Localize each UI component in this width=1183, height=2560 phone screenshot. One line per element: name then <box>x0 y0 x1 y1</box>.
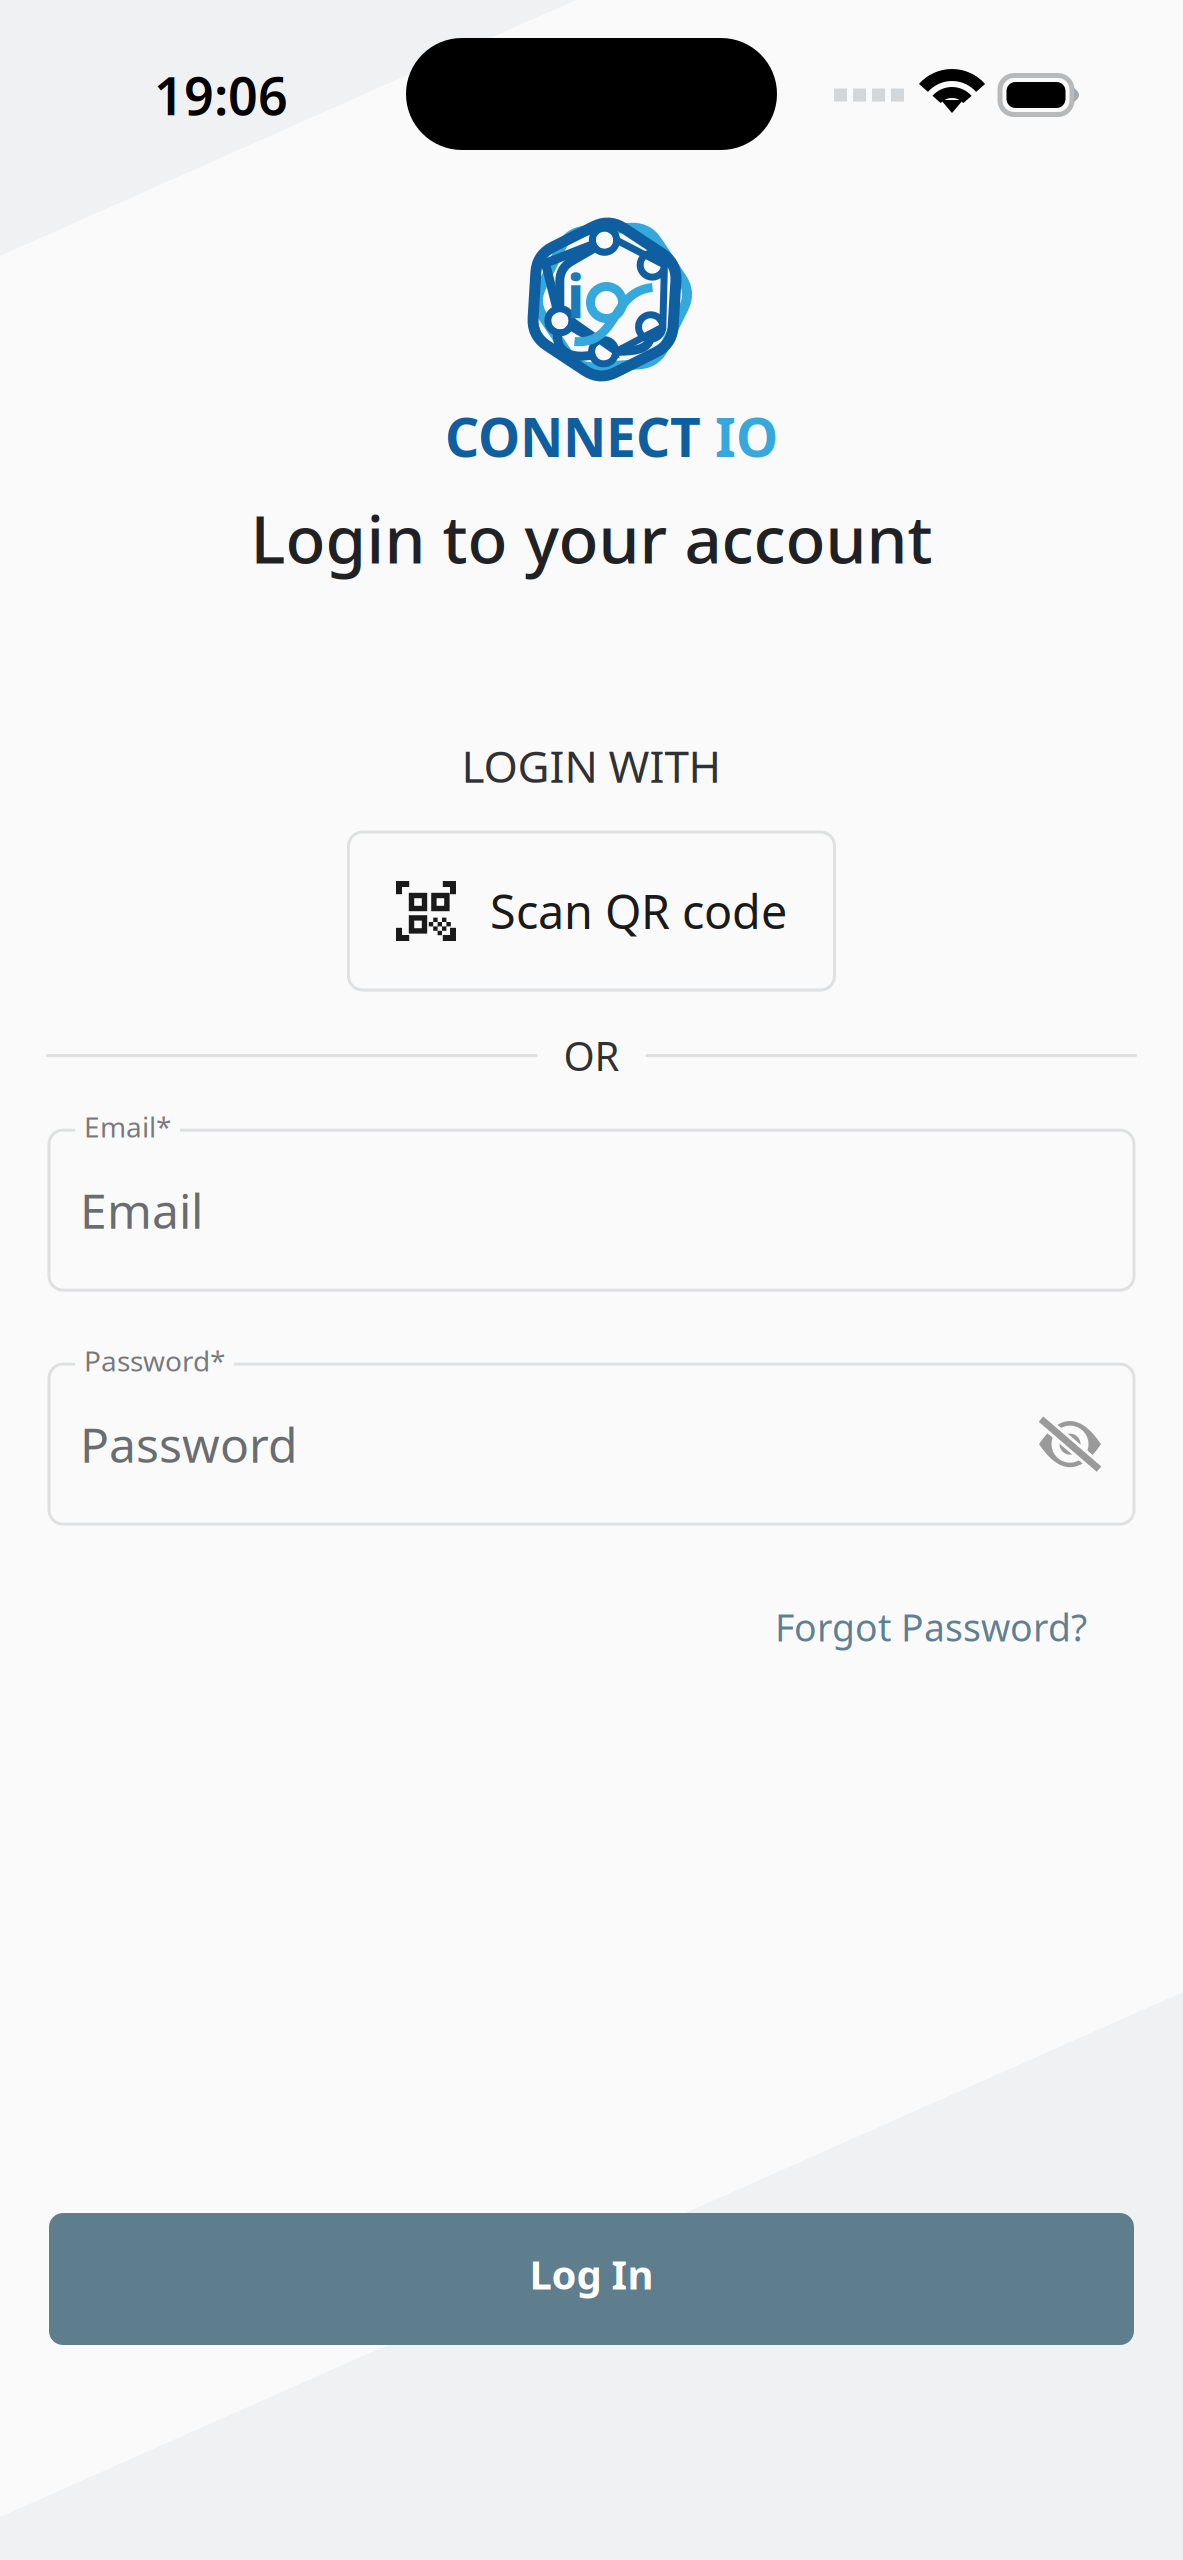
button[interactable]: Show password <box>1037 1415 1103 1473</box>
staticText: Password* <box>84 1342 225 1379</box>
staticText: LOGIN WITH <box>461 737 721 795</box>
staticText: Login to your account <box>250 495 932 582</box>
button[interactable]: Scan QR code <box>348 832 834 990</box>
button[interactable]: Forgot Password? <box>775 1602 1087 1652</box>
staticText: CONNECT <box>445 401 701 472</box>
staticText: Scan QR code <box>490 880 787 942</box>
button[interactable]: Log In <box>49 2213 1134 2345</box>
staticText: Email* <box>84 1108 171 1145</box>
staticText: IO <box>701 401 778 472</box>
staticText: Email <box>80 1178 203 1242</box>
staticText: Forgot Password? <box>775 1602 1087 1652</box>
staticText: Log In <box>529 2247 653 2300</box>
staticText: 19:06 <box>154 60 288 130</box>
staticText: OR <box>563 1029 619 1082</box>
staticText: i <box>566 254 584 335</box>
staticText: Password <box>80 1412 298 1476</box>
